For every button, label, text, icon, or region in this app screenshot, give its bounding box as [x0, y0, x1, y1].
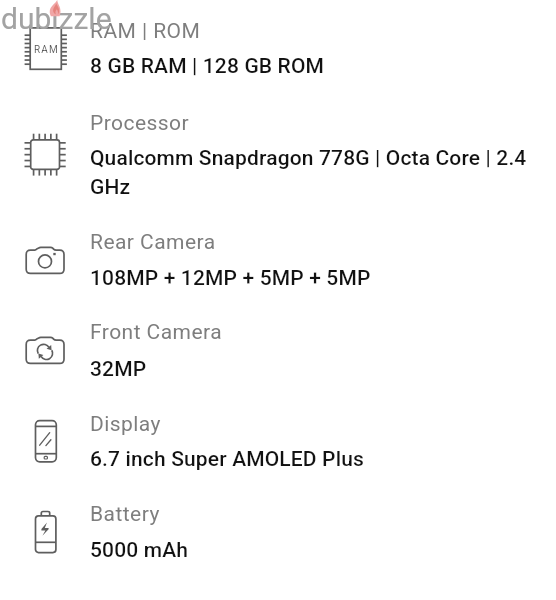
button[interactable]: Battery: [90, 502, 538, 527]
button[interactable]: 32MP: [90, 357, 538, 382]
button[interactable]: Processor: [90, 111, 538, 136]
staticText: 108MP + 12MP + 5MP + 5MP: [90, 266, 371, 291]
button[interactable]: Front camera: [0, 322, 89, 382]
staticText: Display: [90, 412, 161, 437]
staticText: RAM: [34, 44, 60, 56]
staticText: RAM | ROM: [90, 19, 201, 44]
button[interactable]: Qualcomm Snapdragon 778G | Octa Core | 2…: [90, 146, 538, 199]
staticText: Rear Camera: [90, 230, 216, 255]
staticText: Processor: [90, 111, 190, 136]
staticText: dubizzle: [1, 1, 112, 36]
button[interactable]: 6.7 inch Super AMOLED Plus: [90, 447, 538, 472]
staticText: Qualcomm Snapdragon 778G | Octa Core | 2…: [90, 146, 538, 199]
button[interactable]: Processor: [0, 125, 89, 185]
staticText: Battery: [90, 502, 160, 527]
staticText: 6.7 inch Super AMOLED Plus: [90, 447, 364, 472]
button[interactable]: Display: [0, 412, 89, 472]
button[interactable]: 8 GB RAM | 128 GB ROM: [90, 54, 538, 79]
button[interactable]: RAM | ROM: [90, 19, 538, 44]
staticText: Front Camera: [90, 320, 223, 345]
button[interactable]: Rear camera: [0, 232, 89, 292]
button[interactable]: Battery: [0, 503, 89, 563]
button[interactable]: 5000 mAh: [90, 538, 538, 563]
staticText: 8 GB RAM | 128 GB ROM: [90, 54, 325, 79]
button[interactable]: 108MP + 12MP + 5MP + 5MP: [90, 266, 538, 291]
staticText: 5000 mAh: [90, 538, 189, 563]
staticText: 32MP: [90, 357, 147, 382]
button[interactable]: Front Camera: [90, 320, 538, 345]
button[interactable]: Rear Camera: [90, 230, 538, 255]
button[interactable]: RAM and ROM: [0, 19, 89, 79]
button[interactable]: Display: [90, 412, 538, 437]
